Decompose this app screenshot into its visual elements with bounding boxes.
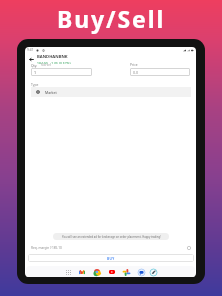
staticText: Buy/Sell	[57, 3, 166, 34]
staticText: You will see an extended ad for brokerag…	[62, 235, 161, 239]
button[interactable]: YouTube	[108, 268, 116, 276]
button[interactable]: Gmail	[78, 268, 86, 276]
button[interactable]: BUY	[28, 254, 194, 262]
button[interactable]: 0.0	[133, 68, 190, 76]
staticText: Market	[41, 63, 52, 67]
staticText: BUY	[107, 256, 115, 261]
staticText: 1	[34, 70, 37, 75]
staticText: Qty.	[31, 63, 38, 67]
button[interactable]: Play Store	[122, 268, 130, 276]
staticText: Price	[130, 62, 138, 66]
staticText: Market	[45, 90, 57, 95]
button[interactable]: All apps	[64, 268, 72, 276]
button[interactable]: Market	[31, 87, 191, 97]
button[interactable]: 1	[34, 68, 92, 76]
button[interactable]: Recent app	[149, 268, 157, 276]
staticText: Type	[31, 82, 39, 86]
button[interactable]: Back	[28, 56, 35, 63]
button[interactable]: Messages	[137, 268, 145, 276]
staticText: 184.90 +1.05 (0.57%)	[37, 61, 71, 64]
staticText: 9:41	[27, 48, 34, 52]
button[interactable]: Chrome	[93, 268, 101, 276]
button[interactable]: Info	[186, 245, 192, 251]
staticText: Req. margin ₹185.10	[31, 246, 62, 250]
staticText: BANDHANBNK	[37, 54, 68, 60]
staticText: 0.0	[133, 70, 139, 75]
